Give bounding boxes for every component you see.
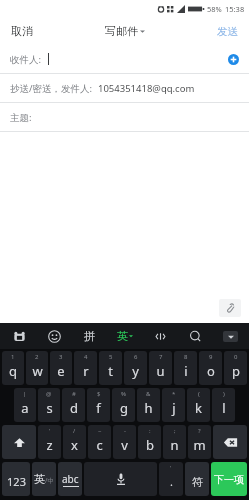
button[interactable]: ' xyxy=(38,425,61,459)
button[interactable]: Emoji xyxy=(41,323,67,349)
staticText: 发送 xyxy=(217,25,238,38)
button[interactable]: abc xyxy=(58,462,82,496)
button[interactable]: 7 xyxy=(149,351,172,385)
button[interactable]: Keyboard theme xyxy=(6,323,32,349)
staticText: ; xyxy=(174,427,176,435)
button[interactable]: @ xyxy=(38,388,60,422)
button[interactable]: # xyxy=(62,388,85,422)
button[interactable]: 8 xyxy=(174,351,197,385)
button[interactable]: 5 xyxy=(99,351,122,385)
staticText: 取消 xyxy=(11,24,33,38)
button[interactable]: 主题: xyxy=(0,103,249,131)
staticText: 0 xyxy=(234,353,238,361)
button[interactable]: 0 xyxy=(224,351,247,385)
button[interactable]: * xyxy=(162,388,185,422)
staticText: 符 xyxy=(192,475,203,489)
staticText: e xyxy=(57,362,65,380)
button[interactable]: % xyxy=(112,388,135,422)
staticText: / xyxy=(73,427,76,435)
staticText: t xyxy=(108,362,113,380)
staticText: ( xyxy=(198,390,200,398)
button[interactable]: | xyxy=(14,388,36,422)
button[interactable]: : xyxy=(138,425,161,459)
button[interactable]: 抄送/密送，发件人: xyxy=(0,74,249,102)
staticText: 58% xyxy=(207,4,222,14)
staticText: 英 xyxy=(117,329,128,343)
staticText: o xyxy=(207,362,215,380)
staticText: 下一项 xyxy=(214,473,244,486)
staticText: 4 xyxy=(84,353,88,361)
button[interactable]: 1 xyxy=(2,351,24,385)
button[interactable]: & xyxy=(137,388,160,422)
button[interactable]: ? xyxy=(188,425,211,459)
staticText: @ xyxy=(46,390,52,398)
button[interactable]: ~ xyxy=(88,425,111,459)
staticText: - xyxy=(124,427,126,435)
button[interactable]: 6 xyxy=(124,351,147,385)
button[interactable]: 符 xyxy=(185,462,209,496)
button[interactable]: 2 xyxy=(26,351,48,385)
staticText: b xyxy=(146,436,154,454)
staticText: q xyxy=(9,362,17,380)
staticText: 7 xyxy=(159,353,163,361)
button[interactable]: $ xyxy=(87,388,110,422)
staticText: k xyxy=(195,399,202,417)
staticText: 5 xyxy=(109,353,113,361)
button[interactable]: 收件人: xyxy=(0,45,249,73)
button[interactable]: Shift xyxy=(2,425,36,459)
staticText: # xyxy=(72,390,76,398)
button[interactable]: Attach file xyxy=(219,299,241,317)
staticText: : xyxy=(149,427,151,435)
staticText: 2 xyxy=(35,353,39,361)
staticText: s xyxy=(46,399,53,417)
staticText: m xyxy=(193,436,206,454)
button[interactable]: 9 xyxy=(199,351,222,385)
button[interactable]: 写邮件 xyxy=(101,20,149,42)
staticText: ~ xyxy=(98,427,102,435)
staticText: 6 xyxy=(134,353,138,361)
button[interactable]: Hide keyboard xyxy=(217,323,243,349)
staticText: j xyxy=(172,399,176,417)
staticText: $ xyxy=(97,390,101,398)
button[interactable]: 英 xyxy=(32,462,56,496)
staticText: z xyxy=(46,436,53,454)
staticText: d xyxy=(70,399,78,417)
button[interactable]: 123 xyxy=(2,462,30,496)
button[interactable]: ; xyxy=(163,425,186,459)
button[interactable]: Backspace xyxy=(213,425,247,459)
button[interactable]: 下一项 xyxy=(211,462,247,496)
staticText: 英 xyxy=(34,472,45,486)
staticText: l xyxy=(222,399,226,417)
staticText: * xyxy=(172,390,176,398)
button[interactable]: 3 xyxy=(50,351,72,385)
staticText: 123 xyxy=(7,474,26,489)
staticText: & xyxy=(146,390,151,398)
button[interactable]: English mode xyxy=(112,323,138,349)
staticText: 15:38 xyxy=(225,4,245,14)
button[interactable]: Cursor move xyxy=(147,323,173,349)
staticText: n xyxy=(170,436,179,454)
button[interactable]: / xyxy=(63,425,86,459)
button[interactable]: Add recipient xyxy=(228,54,239,65)
staticText: v xyxy=(121,436,128,454)
button[interactable]: Pinyin xyxy=(76,323,102,349)
button[interactable]: ) xyxy=(212,388,235,422)
staticText: r xyxy=(83,362,89,380)
button[interactable]: ( xyxy=(187,388,210,422)
button[interactable]: Voice input / Space xyxy=(84,462,157,496)
staticText: 9 xyxy=(209,353,213,361)
staticText: % xyxy=(121,390,126,398)
button[interactable]: 取消 xyxy=(0,17,44,45)
staticText: 拼 xyxy=(84,329,95,343)
button[interactable]: ' xyxy=(159,462,183,496)
button[interactable]: - xyxy=(113,425,136,459)
staticText: 抄送/密送，发件人: xyxy=(10,82,93,95)
button[interactable]: 发送 xyxy=(206,17,249,45)
staticText: a xyxy=(21,399,29,417)
button[interactable]: 4 xyxy=(74,351,97,385)
staticText: g xyxy=(120,399,128,417)
staticText: 3 xyxy=(59,353,63,361)
button[interactable]: Search xyxy=(182,323,208,349)
staticText: 1 xyxy=(11,353,15,361)
staticText: p xyxy=(232,362,240,380)
